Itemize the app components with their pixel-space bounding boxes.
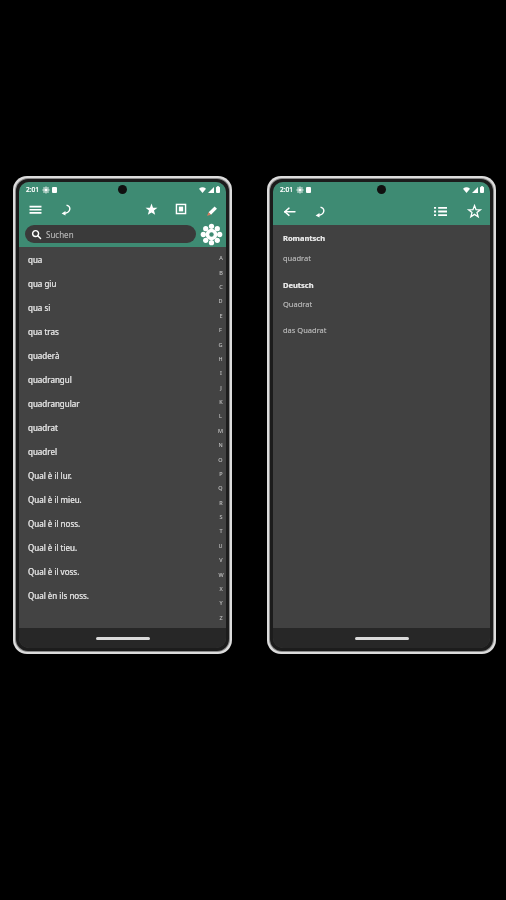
staticText: J <box>220 384 222 391</box>
staticText: G <box>218 341 223 348</box>
staticText: Y <box>219 599 223 606</box>
staticText: D <box>218 297 223 304</box>
button[interactable]: quadrangul <box>19 367 226 391</box>
button[interactable]: quadrangular <box>19 391 226 415</box>
button[interactable]: Qual è il noss. <box>19 511 226 535</box>
staticText: P <box>219 470 223 477</box>
staticText: F <box>219 326 222 333</box>
button[interactable]: quadrel <box>19 439 226 463</box>
staticText: M <box>218 427 223 434</box>
staticText: Qual è il noss. <box>28 518 81 529</box>
staticText: quadrangul <box>28 374 72 385</box>
staticText: Romantsch <box>283 233 326 243</box>
staticText: quadrel <box>28 446 57 457</box>
button[interactable]: quadrat <box>283 253 311 263</box>
staticText: S <box>219 513 223 520</box>
button[interactable]: Qual è il mieu. <box>19 487 226 511</box>
staticText: W <box>218 571 224 578</box>
button[interactable]: Add to favorites <box>464 201 484 221</box>
button[interactable]: Qual è il lur. <box>19 463 226 487</box>
button[interactable]: Qual èn ils noss. <box>19 583 226 607</box>
staticText: E <box>219 312 223 319</box>
staticText: quadrangular <box>28 398 80 409</box>
staticText: B <box>219 269 223 276</box>
staticText: quadrat <box>28 422 58 433</box>
staticText: X <box>219 585 223 592</box>
staticText: Qual è il mieu. <box>28 494 82 505</box>
staticText: qua tras <box>28 326 59 337</box>
staticText: R <box>219 499 223 506</box>
staticText: Deutsch <box>283 280 314 290</box>
staticText: V <box>219 556 223 563</box>
staticText: T <box>219 527 223 534</box>
staticText: qua <box>28 254 43 265</box>
staticText: L <box>219 412 222 419</box>
staticText: 2:01 <box>26 185 39 194</box>
staticText: H <box>218 355 223 362</box>
staticText: qua giu <box>28 278 57 289</box>
button[interactable]: quadrat <box>19 415 226 439</box>
button[interactable]: Alphabet index <box>215 247 226 628</box>
button[interactable]: Swap languages <box>55 199 75 219</box>
staticText: quadrat <box>283 253 311 263</box>
staticText: A <box>219 254 223 261</box>
staticText: Q <box>218 484 223 491</box>
staticText: K <box>219 398 223 405</box>
button[interactable]: das Quadrat <box>283 325 327 335</box>
button[interactable]: quaderà <box>19 343 226 367</box>
staticText: Qual è il lur. <box>28 470 72 481</box>
staticText: U <box>218 542 223 549</box>
staticText: qua si <box>28 302 51 313</box>
staticText: Qual èn ils noss. <box>28 590 89 601</box>
button[interactable]: Menu <box>25 199 45 219</box>
button[interactable]: List view <box>430 201 450 221</box>
button[interactable]: qua <box>19 247 226 271</box>
button[interactable]: qua tras <box>19 319 226 343</box>
staticText: das Quadrat <box>283 325 327 335</box>
button[interactable]: Settings <box>200 223 222 245</box>
staticText: N <box>218 441 223 448</box>
button[interactable]: Edit <box>201 199 221 219</box>
button[interactable]: qua si <box>19 295 226 319</box>
button[interactable]: Dictionary <box>171 199 191 219</box>
staticText: quaderà <box>28 350 60 361</box>
button[interactable]: qua giu <box>19 271 226 295</box>
button[interactable]: Qual è il tieu. <box>19 535 226 559</box>
button[interactable]: Qual è il voss. <box>19 559 226 583</box>
button[interactable]: Back <box>279 201 299 221</box>
button[interactable]: Quadrat <box>283 299 313 309</box>
staticText: Quadrat <box>283 299 313 309</box>
staticText: Suchen <box>46 229 74 240</box>
button[interactable]: Favorites <box>141 199 161 219</box>
staticText: C <box>219 283 223 290</box>
staticText: I <box>220 369 222 376</box>
button[interactable]: Suchen <box>25 225 196 243</box>
staticText: Z <box>219 614 223 621</box>
staticText: Qual è il tieu. <box>28 542 78 553</box>
button[interactable]: Swap languages <box>309 201 329 221</box>
staticText: O <box>218 456 223 463</box>
staticText: 2:01 <box>280 185 293 194</box>
staticText: Qual è il voss. <box>28 566 80 577</box>
